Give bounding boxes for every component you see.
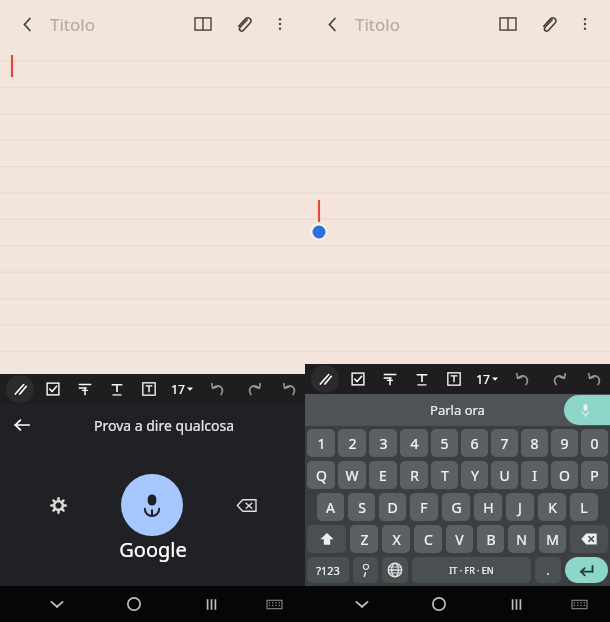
button[interactable]: Enter (565, 557, 608, 583)
button[interactable]: More options (265, 9, 295, 39)
button[interactable]: Y (461, 461, 488, 489)
button[interactable]: T (431, 461, 458, 489)
button[interactable]: Recent apps (196, 589, 226, 619)
staticText: 2 (348, 434, 357, 453)
button[interactable]: L (570, 493, 598, 521)
button[interactable]: G (442, 493, 470, 521)
button[interactable]: Recent apps (501, 589, 531, 619)
button[interactable]: E (369, 461, 397, 489)
button[interactable]: Checklist (42, 378, 64, 400)
button[interactable]: H (474, 493, 502, 521)
button[interactable]: M (539, 525, 566, 553)
button[interactable]: I (521, 461, 548, 489)
button[interactable]: Undo (207, 378, 229, 400)
button[interactable]: Back (10, 7, 44, 41)
button[interactable]: S (348, 493, 375, 521)
button[interactable]: 6 (461, 429, 488, 457)
button[interactable]: 5 (431, 429, 458, 457)
staticText: W (345, 466, 359, 485)
staticText: Y (471, 466, 479, 485)
button[interactable]: D (379, 493, 406, 521)
button[interactable]: Shift (307, 525, 346, 553)
button[interactable]: 8 (521, 429, 548, 457)
button[interactable]: Pen (311, 365, 339, 393)
button[interactable]: More options (570, 9, 600, 39)
button[interactable]: Keyboard (564, 589, 594, 619)
button[interactable]: F (410, 493, 438, 521)
button[interactable]: Keyboard (259, 589, 289, 619)
button[interactable]: Settings (41, 488, 75, 522)
staticText: Titolo (50, 13, 95, 36)
button[interactable]: W (338, 461, 366, 489)
button[interactable]: 4 (400, 429, 428, 457)
button[interactable]: ?123 (307, 557, 349, 583)
button[interactable]: Pen (6, 375, 34, 403)
button[interactable]: Q (307, 461, 335, 489)
button[interactable]: 0 (581, 429, 608, 457)
button[interactable]: Backspace (229, 488, 263, 522)
button[interactable]: 7 (491, 429, 518, 457)
button[interactable]: Hide keyboard (42, 589, 72, 619)
staticText: V (455, 530, 464, 549)
button[interactable]: Redo (243, 378, 265, 400)
staticText: S (358, 498, 366, 517)
button[interactable]: Undo (512, 368, 534, 390)
button[interactable]: Checklist (347, 368, 369, 390)
staticText: 6 (470, 434, 479, 453)
button[interactable]: X (382, 525, 410, 553)
button[interactable]: O (551, 461, 578, 489)
staticText: J (518, 498, 522, 517)
button[interactable]: 17 (474, 371, 500, 387)
button[interactable]: Voice input (564, 395, 610, 425)
button[interactable]: More (584, 368, 606, 390)
button[interactable]: Change language (382, 557, 408, 583)
button[interactable]: Microphone (121, 474, 183, 536)
staticText: O (559, 466, 570, 485)
button[interactable]: Back (315, 7, 349, 41)
staticText: R (410, 466, 419, 485)
button[interactable]: Reading mode (187, 8, 219, 40)
staticText: U (499, 466, 510, 485)
button[interactable]: Attach (532, 8, 564, 40)
button[interactable]: 3 (369, 429, 397, 457)
button[interactable]: Text style (106, 378, 128, 400)
button[interactable]: P (581, 461, 608, 489)
button[interactable]: Home (424, 589, 454, 619)
button[interactable]: U (491, 461, 518, 489)
button[interactable]: 2 (338, 429, 366, 457)
button[interactable]: Home (119, 589, 149, 619)
button[interactable]: . (535, 557, 561, 583)
button[interactable]: Text box (443, 368, 465, 390)
staticText: Google (119, 536, 187, 563)
button[interactable]: N (508, 525, 535, 553)
staticText: 9 (560, 434, 569, 453)
button[interactable]: A (317, 493, 344, 521)
button[interactable]: Hide keyboard (347, 589, 377, 619)
button[interactable]: Z (350, 525, 378, 553)
staticText: 17 (476, 371, 490, 387)
button[interactable]: Attach (227, 8, 259, 40)
button[interactable]: 9 (551, 429, 578, 457)
button[interactable]: C (414, 525, 442, 553)
button[interactable]: Paragraph (379, 368, 401, 390)
button[interactable]: R (400, 461, 428, 489)
button[interactable]: Paragraph (74, 378, 96, 400)
button[interactable]: V (446, 525, 473, 553)
button[interactable]: B (477, 525, 504, 553)
button[interactable]: Text box (138, 378, 160, 400)
button[interactable]: Backspace (570, 525, 608, 553)
button[interactable]: Reading mode (492, 8, 524, 40)
staticText: F (420, 498, 428, 517)
button[interactable]: IT · FR · EN (412, 557, 531, 583)
button[interactable]: J (506, 493, 534, 521)
button[interactable]: 17 (169, 381, 195, 397)
staticText: B (486, 530, 496, 549)
button[interactable]: Text style (411, 368, 433, 390)
button[interactable]: Close voice input (6, 409, 38, 441)
button[interactable]: Redo (548, 368, 570, 390)
button[interactable]: K (538, 493, 566, 521)
button[interactable]: Emoji and comma (353, 557, 378, 583)
button[interactable]: More (279, 378, 301, 400)
button[interactable]: 1 (307, 429, 335, 457)
staticText: T (441, 466, 449, 485)
